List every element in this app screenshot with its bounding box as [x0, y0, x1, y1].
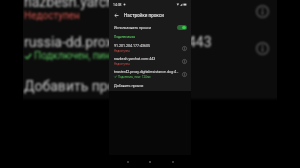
button[interactable]: Информация	[181, 58, 187, 64]
button[interactable]: Назад	[124, 158, 132, 166]
button[interactable]: Назад	[112, 11, 121, 20]
button[interactable]: Информация	[181, 45, 187, 51]
staticText: Настройки прокси	[124, 13, 164, 18]
staticText: nazbesh.yarchat.com:443	[114, 57, 156, 61]
button[interactable]: Обзор	[169, 158, 177, 166]
staticText: 91.201.204.177:43605	[114, 44, 151, 48]
button[interactable]: nazbesh.yarchat.com:443	[109, 54, 191, 67]
staticText: Подключен, пинг: 124 мс	[118, 75, 151, 78]
staticText: teaster42.proxy.digitalresistance.dog:44…	[114, 70, 179, 74]
button[interactable]: 91.201.204.177:43605	[109, 41, 191, 54]
button[interactable]: Информация	[181, 71, 187, 77]
button[interactable]: Использовать прокси	[109, 22, 191, 33]
staticText: russia-dd.proxy.dgres.dog:443	[24, 34, 212, 50]
button[interactable]: Добавить прокси	[109, 80, 191, 91]
staticText: Недоступен	[114, 49, 130, 52]
button[interactable]: teaster42.proxy.digitalresistance.dog:44…	[109, 67, 191, 80]
staticText: Подключен, пинг: 94 мс	[34, 50, 146, 62]
button[interactable]: Домой	[146, 158, 154, 166]
staticText: 14:38	[113, 3, 122, 7]
staticText: Недоступен	[24, 10, 80, 22]
staticText: Добавить прокси	[24, 78, 139, 94]
staticText: Использовать прокси	[114, 26, 152, 30]
staticText: Добавить прокси	[114, 84, 144, 88]
staticText: nazbesh.yarchat.com:443	[24, 0, 185, 10]
staticText: Недоступен	[114, 62, 130, 65]
staticText: Подключения	[114, 35, 135, 39]
